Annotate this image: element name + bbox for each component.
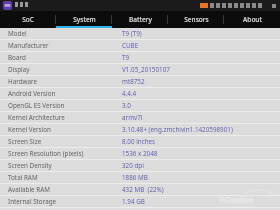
staticText: System bbox=[73, 15, 96, 24]
staticText: Hardware bbox=[8, 77, 122, 86]
staticText: mt8752 bbox=[122, 77, 145, 86]
staticText: Screen Density bbox=[8, 161, 122, 170]
staticText: 320 dpi bbox=[122, 161, 144, 170]
staticText: Model bbox=[8, 29, 122, 38]
button[interactable]: Hardware bbox=[0, 76, 280, 87]
staticText: Screen Resolution (pixels) bbox=[8, 149, 122, 158]
button[interactable]: Total RAM bbox=[0, 172, 280, 183]
staticText: Screen Size bbox=[8, 137, 122, 146]
staticText: Android Version bbox=[8, 89, 122, 98]
button[interactable]: Sensors bbox=[168, 11, 224, 28]
button[interactable]: About bbox=[224, 11, 280, 28]
button[interactable]: SoC bbox=[0, 11, 56, 28]
staticText: 8.00 inches bbox=[122, 137, 156, 146]
button[interactable]: Screen Density bbox=[0, 160, 280, 171]
button[interactable]: Screen Size bbox=[0, 136, 280, 147]
staticText: Kernel Architecture bbox=[8, 113, 122, 122]
button[interactable]: Manufacturer bbox=[0, 40, 280, 51]
staticText: 432 MB (22%) bbox=[122, 185, 164, 194]
staticText: V1.05_20150107 bbox=[122, 65, 170, 74]
staticText: SoC bbox=[22, 15, 34, 24]
staticText: Total RAM bbox=[8, 173, 122, 182]
staticText: PConline bbox=[219, 194, 255, 205]
staticText: 1.94 GB bbox=[122, 197, 145, 206]
button[interactable]: Kernel Architecture bbox=[0, 112, 280, 123]
staticText: Display bbox=[8, 65, 122, 74]
staticText: Kernel Version bbox=[8, 125, 122, 134]
staticText: T9 (T9) bbox=[122, 29, 142, 38]
staticText: Internal Storage bbox=[8, 197, 122, 206]
button[interactable]: Model bbox=[0, 28, 280, 39]
staticText: Board bbox=[8, 53, 122, 62]
button[interactable]: Internal Storage bbox=[0, 196, 280, 207]
button[interactable]: Board bbox=[0, 52, 280, 63]
button[interactable]: Kernel Version bbox=[0, 124, 280, 135]
staticText: 1536 x 2048 bbox=[122, 149, 158, 158]
button[interactable]: System bbox=[56, 11, 112, 28]
button[interactable]: Battery bbox=[112, 11, 168, 28]
staticText: 3.10.48+ (eng.zmchivin1.1420598901) bbox=[122, 125, 233, 134]
staticText: Battery bbox=[129, 15, 152, 24]
staticText: About bbox=[243, 15, 262, 24]
staticText: 3.0 bbox=[122, 101, 131, 110]
staticText: 4.4.4 bbox=[122, 89, 137, 98]
button[interactable]: Android Version bbox=[0, 88, 280, 99]
staticText: Sensors bbox=[184, 15, 209, 24]
staticText: Manufacturer bbox=[8, 41, 122, 50]
button[interactable]: Display bbox=[0, 64, 280, 75]
staticText: T9 bbox=[122, 53, 130, 62]
staticText: armv7l bbox=[122, 113, 143, 122]
staticText: CUBE bbox=[122, 41, 139, 50]
button[interactable]: OpenGL ES Version bbox=[0, 100, 280, 111]
button[interactable]: Screen Resolution (pixels) bbox=[0, 148, 280, 159]
staticText: 1886 MB bbox=[122, 173, 148, 182]
button[interactable]: Available RAM bbox=[0, 184, 280, 195]
staticText: Available RAM bbox=[8, 185, 122, 194]
staticText: OpenGL ES Version bbox=[8, 101, 122, 110]
